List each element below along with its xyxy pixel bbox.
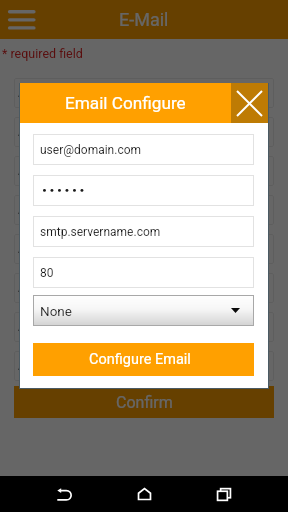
button[interactable]: None [33, 295, 254, 326]
button[interactable]: Aa [14, 156, 274, 186]
button[interactable]: Recents [202, 476, 246, 512]
button[interactable]: Aa [14, 117, 274, 147]
button[interactable]: Aa [14, 78, 274, 108]
staticText: * required field [2, 46, 83, 61]
button[interactable]: Menu [4, 0, 39, 39]
staticText: Aa [18, 281, 33, 295]
staticText: Aa [18, 203, 33, 217]
staticText: E-Mail [119, 9, 169, 30]
button[interactable]: smtp.servername.com [33, 216, 254, 247]
button[interactable]: Configure Email [33, 343, 254, 376]
button[interactable]: Aa [14, 234, 274, 264]
staticText: Aa [18, 86, 33, 100]
staticText: Aa [18, 320, 33, 334]
button[interactable]: Back [42, 476, 86, 512]
staticText: Aa [18, 242, 33, 256]
staticText: None [40, 303, 72, 319]
button[interactable]: Aa [14, 351, 274, 381]
button[interactable]: Aa [14, 195, 274, 225]
button[interactable]: Close [231, 83, 268, 123]
staticText: Email Configure [65, 93, 186, 113]
staticText: 80 [40, 266, 54, 280]
button[interactable]: Aa [14, 312, 274, 342]
button[interactable]: user@domain.com [33, 134, 254, 165]
button[interactable]: Home [122, 476, 166, 512]
staticText: user@domain.com [40, 143, 142, 157]
staticText: Confirm [116, 393, 173, 412]
button[interactable]: 80 [33, 257, 254, 288]
staticText: Aa [18, 125, 33, 139]
button[interactable]: Confirm [14, 386, 274, 418]
button[interactable] [33, 175, 254, 206]
staticText: smtp.servername.com [40, 225, 161, 239]
button[interactable]: Aa [14, 273, 274, 303]
staticText: Configure Email [89, 351, 191, 368]
staticText: Aa [18, 164, 33, 178]
staticText: Aa [18, 359, 33, 373]
